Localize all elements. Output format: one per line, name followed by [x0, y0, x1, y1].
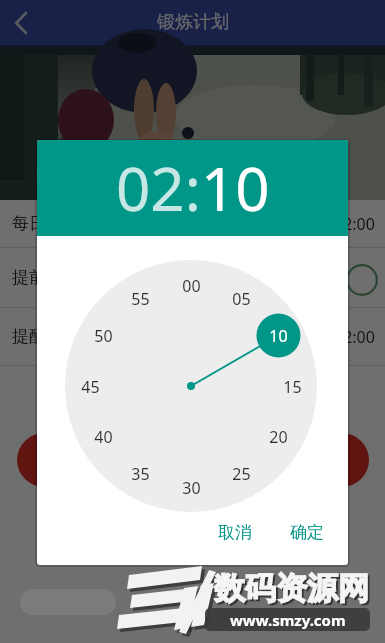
- staticText: 05: [232, 288, 251, 308]
- staticText: 02:: [116, 147, 201, 229]
- button[interactable]: [0, 0, 44, 45]
- button[interactable]: 取消: [208, 518, 262, 546]
- staticText: 02:00: [334, 213, 375, 235]
- staticText: 数码资源网: [214, 569, 369, 608]
- button[interactable]: 保存: [17, 433, 369, 487]
- staticText: 35: [131, 463, 150, 483]
- staticText: 00: [182, 275, 201, 295]
- staticText: 提醒时间: [12, 326, 80, 347]
- staticText: 10: [269, 325, 288, 345]
- staticText: 锻炼计划: [157, 11, 229, 34]
- staticText: 数码资源网: [216, 571, 371, 610]
- button[interactable]: 提前提醒: [0, 248, 385, 307]
- staticText: 取消: [218, 522, 252, 543]
- staticText: 每日目标: [12, 213, 80, 234]
- button[interactable]: 每日目标: [0, 200, 385, 247]
- staticText: 15: [283, 376, 302, 396]
- staticText: 02:00: [334, 326, 375, 348]
- staticText: 提前提醒: [12, 267, 80, 288]
- staticText: 20: [269, 426, 288, 446]
- staticText: 确定: [290, 522, 324, 543]
- staticText: 40: [94, 426, 113, 446]
- staticText: 25: [232, 463, 251, 483]
- staticText: www.smzy.com: [230, 610, 346, 630]
- staticText: 10: [201, 147, 270, 229]
- staticText: 45: [81, 376, 100, 396]
- button[interactable]: 确定: [280, 518, 334, 546]
- button[interactable]: 提醒时间: [0, 308, 385, 365]
- staticText: 50: [94, 325, 113, 345]
- staticText: 55: [131, 288, 150, 308]
- staticText: 30: [182, 477, 201, 497]
